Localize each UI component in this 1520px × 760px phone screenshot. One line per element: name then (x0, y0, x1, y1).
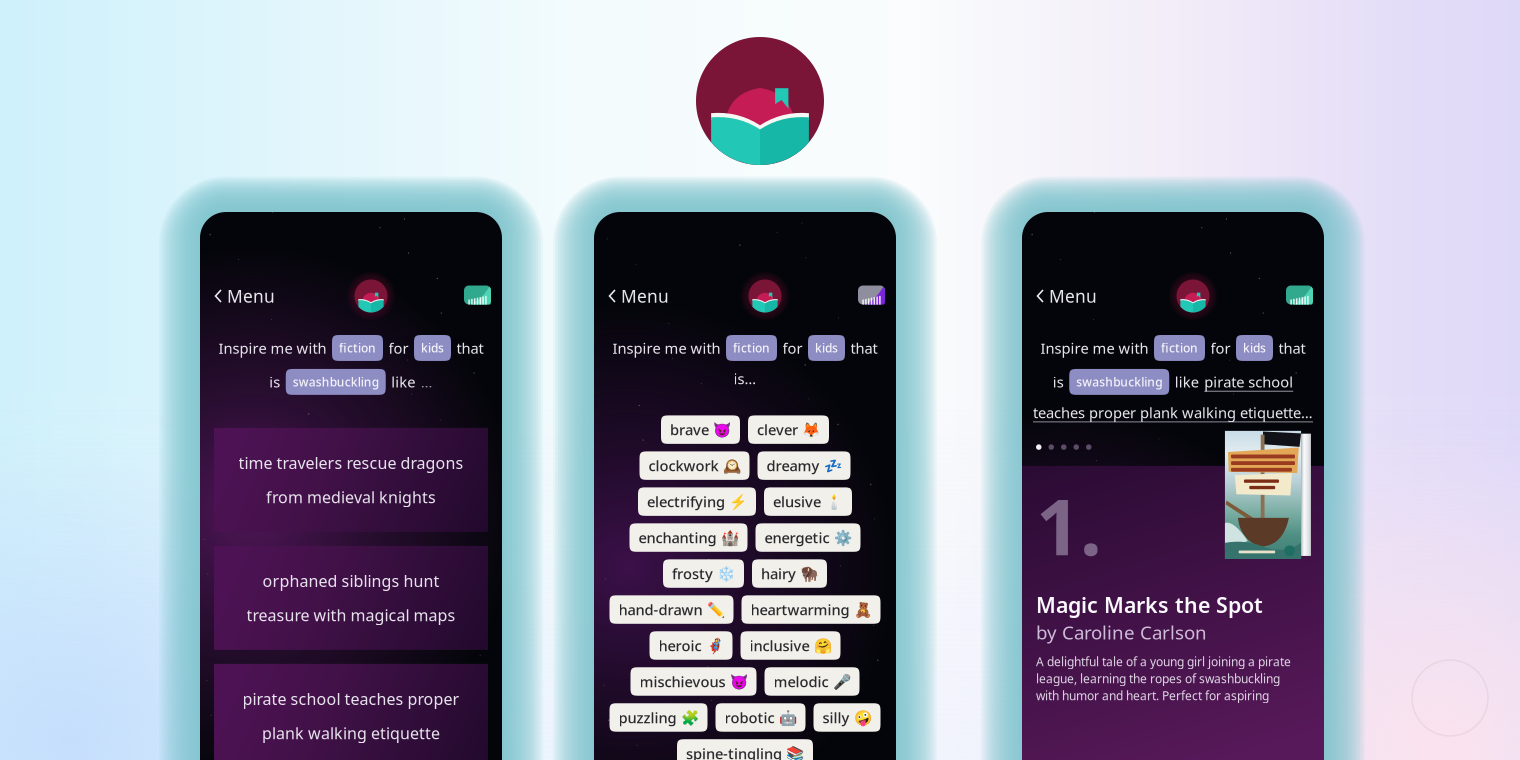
button[interactable]: kids (808, 335, 845, 361)
staticText: dreamy 💤 (766, 456, 841, 475)
button[interactable]: melodic 🎤 (764, 667, 859, 696)
button[interactable]: kids (414, 335, 451, 361)
staticText: clockwork 🕰️ (648, 456, 740, 475)
staticText: kids (1243, 340, 1266, 356)
staticText: Menu (621, 284, 669, 307)
staticText: that (850, 338, 877, 358)
button[interactable]: spine-tingling 📚 (677, 739, 813, 760)
staticText: fiction (1161, 340, 1198, 356)
staticText: fiction (339, 340, 376, 356)
staticText: is (1053, 372, 1064, 392)
staticText: kids (421, 340, 444, 356)
staticText: fiction (733, 340, 770, 356)
button[interactable]: dreamy 💤 (757, 451, 850, 480)
staticText: energetic ⚙️ (764, 528, 851, 547)
staticText: that (1278, 338, 1305, 358)
staticText: treasure with magical maps (246, 604, 455, 626)
button[interactable]: elusive 🕯️ (764, 487, 852, 516)
button[interactable]: electrifying ⚡ (638, 487, 756, 516)
button[interactable]: enchanting 🏰 (629, 523, 747, 552)
staticText: A delightful tale of a young girl joinin… (1036, 654, 1291, 670)
staticText: for (782, 338, 802, 358)
staticText: mischievous 😈 (639, 672, 747, 691)
staticText: melodic 🎤 (773, 672, 850, 691)
staticText: Menu (227, 284, 275, 307)
button[interactable]: hand-drawn ✏️ (609, 595, 733, 624)
staticText: 1. (1036, 474, 1102, 576)
button[interactable]: Menu (211, 278, 278, 313)
staticText: heroic 🦸 (658, 636, 723, 655)
button[interactable]: Reading progress (1286, 285, 1313, 306)
staticText: like (1175, 372, 1199, 392)
button[interactable]: fiction (332, 335, 383, 361)
button[interactable]: fiction (726, 335, 777, 361)
staticText: kids (815, 340, 838, 356)
staticText: is… (733, 369, 756, 388)
staticText: from medieval knights (266, 486, 436, 508)
button[interactable]: kids (1236, 335, 1273, 361)
staticText: time travelers rescue dragons (238, 452, 463, 473)
button[interactable]: swashbuckling (1069, 369, 1169, 395)
staticText: orphaned siblings hunt (262, 570, 439, 591)
staticText: league, learning the ropes of swashbuckl… (1036, 671, 1280, 686)
staticText: enchanting 🏰 (638, 528, 738, 547)
button[interactable]: Reading progress (464, 285, 491, 306)
staticText: puzzling 🧩 (618, 708, 698, 727)
button[interactable]: frosty ❄️ (663, 559, 744, 588)
staticText: Inspire me with (218, 338, 326, 358)
button[interactable]: heroic 🦸 (649, 631, 732, 660)
button[interactable]: pirate school teaches proper (214, 664, 488, 760)
button[interactable]: heartwarming 🧸 (741, 595, 880, 624)
staticText: is (269, 372, 280, 392)
staticText: elusive 🕯️ (773, 492, 843, 511)
button[interactable]: robotic 🤖 (715, 703, 805, 732)
staticText: electrifying ⚡ (647, 492, 747, 511)
staticText: pirate school (1204, 372, 1293, 392)
button[interactable]: time travelers rescue dragons (214, 428, 488, 532)
staticText: with humor and heart. Perfect for aspiri… (1036, 687, 1269, 703)
staticText: Inspire me with (1040, 338, 1148, 358)
staticText: swashbuckling (1076, 374, 1162, 390)
staticText: hairy 🦬 (761, 564, 818, 583)
button[interactable]: Menu (605, 278, 672, 313)
staticText: frosty ❄️ (672, 564, 735, 583)
staticText: Menu (1049, 284, 1097, 307)
staticText: inclusive 🤗 (749, 636, 831, 655)
button[interactable]: fiction (1154, 335, 1205, 361)
button[interactable]: orphaned siblings hunt (214, 546, 488, 650)
button[interactable]: Menu (1033, 278, 1100, 313)
staticText: for (388, 338, 408, 358)
button[interactable]: hairy 🦬 (752, 559, 827, 588)
staticText: hand-drawn ✏️ (618, 600, 724, 619)
staticText: brave 😈 (670, 420, 731, 439)
button[interactable]: energetic ⚙️ (755, 523, 860, 552)
staticText: plank walking etiquette (262, 722, 440, 744)
staticText: by Caroline Carlson (1036, 620, 1207, 645)
button[interactable]: clockwork 🕰️ (639, 451, 749, 480)
staticText: silly 🤪 (822, 708, 871, 727)
button[interactable]: inclusive 🤗 (740, 631, 840, 660)
button[interactable]: brave 😈 (661, 415, 740, 444)
button[interactable]: Reading progress (858, 285, 885, 306)
staticText: robotic 🤖 (724, 708, 796, 727)
staticText: like (391, 372, 415, 392)
staticText: spine-tingling 📚 (686, 744, 804, 760)
staticText: Magic Marks the Spot (1036, 590, 1263, 619)
staticText: that (456, 338, 483, 358)
staticText: heartwarming 🧸 (750, 600, 871, 619)
staticText: for (1210, 338, 1230, 358)
button[interactable]: puzzling 🧩 (609, 703, 707, 732)
button[interactable]: mischievous 😈 (630, 667, 756, 696)
staticText: Inspire me with (612, 338, 720, 358)
staticText: pirate school teaches proper (242, 688, 459, 709)
button[interactable]: swashbuckling (286, 369, 386, 395)
staticText: swashbuckling (293, 374, 379, 390)
staticText: … (421, 372, 433, 392)
staticText: clever 🦊 (757, 420, 820, 439)
button[interactable]: clever 🦊 (748, 415, 829, 444)
staticText: teaches proper plank walking etiquette… (1033, 403, 1313, 422)
button[interactable]: silly 🤪 (813, 703, 880, 732)
